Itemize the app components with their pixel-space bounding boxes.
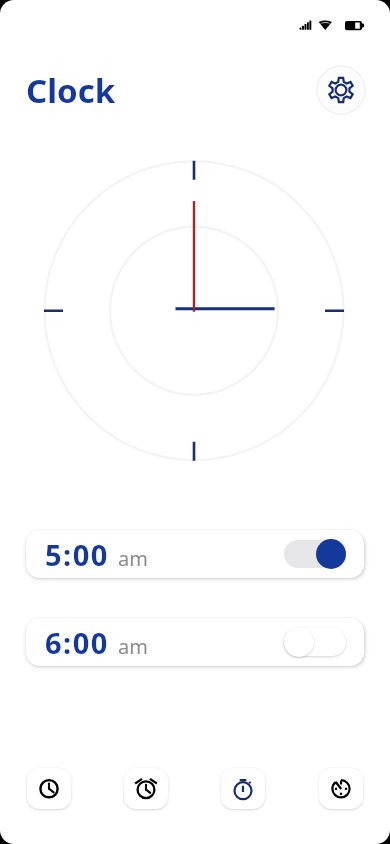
button[interactable]: Clock <box>27 768 71 809</box>
staticText: 6:00 <box>45 623 109 662</box>
staticText: Clock <box>26 68 116 113</box>
button[interactable]: Alarm off <box>284 627 346 657</box>
staticText: am <box>118 545 148 572</box>
button[interactable]: 6:00 <box>26 618 364 666</box>
button[interactable]: Alarm <box>124 768 168 809</box>
button[interactable]: Settings <box>316 65 366 115</box>
button[interactable]: Stopwatch <box>221 768 265 809</box>
button[interactable]: Timer <box>319 768 363 809</box>
staticText: am <box>118 633 148 660</box>
staticText: 5:00 <box>45 535 109 574</box>
button[interactable]: Alarm on <box>284 539 346 569</box>
button[interactable]: 5:00 <box>26 530 364 578</box>
